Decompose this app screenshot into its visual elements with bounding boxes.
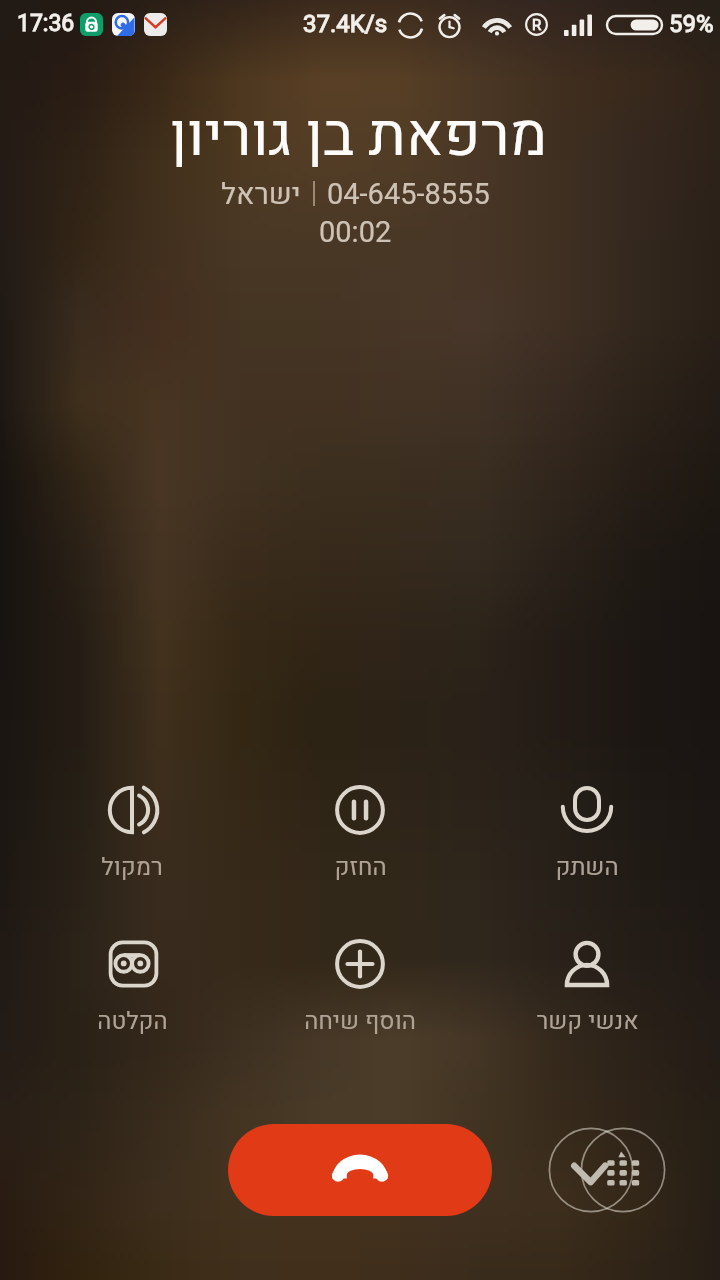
button[interactable]: End call [228, 1124, 492, 1216]
staticText: 00:02 [319, 212, 392, 255]
button[interactable]: השתק [483, 770, 691, 890]
button[interactable]: רמקול [28, 770, 236, 890]
button[interactable]: אנשי קשר [483, 924, 691, 1044]
button[interactable]: הוסף שיחה [256, 924, 464, 1044]
staticText: 37.4K/s [303, 7, 388, 42]
staticText: הוסף שיחה [304, 1004, 416, 1039]
staticText: השתק [555, 850, 619, 885]
staticText: מרפאת בן גוריון [170, 93, 547, 180]
button[interactable]: החזק [256, 770, 464, 890]
staticText: R [532, 14, 542, 36]
button[interactable]: Dialpad [549, 1128, 665, 1212]
staticText: הקלטה [97, 1004, 168, 1039]
staticText: רמקול [101, 850, 163, 885]
staticText: ישראל [221, 174, 301, 217]
staticText: 59% [669, 7, 714, 42]
staticText: אנשי קשר [536, 1004, 639, 1039]
staticText: 17:36 [17, 7, 75, 41]
staticText: החזק [334, 850, 387, 885]
button[interactable]: הקלטה [28, 924, 236, 1044]
staticText: 04-645-8555 [327, 174, 490, 217]
